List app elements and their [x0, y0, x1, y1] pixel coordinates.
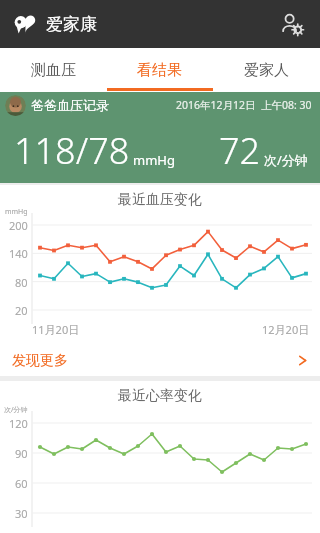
staticText: 30: [15, 506, 28, 521]
staticText: 60: [15, 476, 28, 491]
button[interactable]: Account settings: [274, 6, 310, 42]
staticText: 118/78: [14, 126, 130, 175]
staticText: 80: [15, 275, 28, 290]
staticText: 2016年12月12日 上午08: 30: [176, 98, 312, 112]
staticText: 72: [219, 126, 261, 175]
staticText: 测血压: [31, 61, 76, 80]
staticText: 200: [9, 218, 28, 233]
staticText: 140: [9, 246, 28, 261]
button[interactable]: 发现更多: [0, 345, 320, 376]
staticText: 11月20日: [32, 322, 80, 337]
staticText: 次/分钟: [264, 151, 308, 169]
staticText: 爱家康: [46, 14, 97, 35]
staticText: 发现更多: [12, 352, 68, 370]
button[interactable]: 最近血压变化: [0, 185, 320, 345]
staticText: mmHg: [133, 151, 175, 169]
button[interactable]: 爸爸血压记录: [0, 92, 320, 183]
staticText: 20: [15, 303, 28, 318]
button[interactable]: 看结果: [106, 48, 213, 92]
staticText: 12月20日: [262, 322, 310, 337]
staticText: 次/分钟: [4, 405, 28, 415]
staticText: 120: [9, 416, 28, 431]
staticText: 爸爸血压记录: [31, 97, 109, 113]
button[interactable]: 测血压: [0, 48, 106, 92]
staticText: 90: [15, 446, 28, 461]
staticText: 看结果: [137, 61, 182, 80]
button[interactable]: 最近心率变化: [0, 381, 320, 533]
staticText: 爱家人: [244, 61, 289, 80]
staticText: mmHg: [5, 207, 28, 217]
staticText: 最近血压变化: [118, 191, 202, 209]
button[interactable]: 爱家人: [213, 48, 320, 92]
staticText: 最近心率变化: [118, 387, 202, 405]
